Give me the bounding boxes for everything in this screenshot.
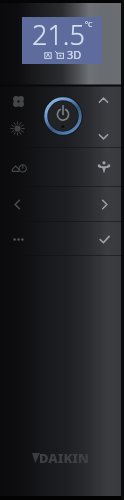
button[interactable]: Temperature down <box>91 124 115 148</box>
staticText: 21.5 <box>32 16 85 53</box>
button[interactable]: Display <box>22 17 102 64</box>
button[interactable]: Mode <box>5 116 29 140</box>
button[interactable]: Previous <box>5 192 29 216</box>
button[interactable]: More <box>6 227 30 251</box>
button[interactable]: Powerful <box>92 155 116 179</box>
button[interactable]: Next <box>92 192 116 216</box>
staticText: 3D <box>67 47 82 62</box>
button[interactable]: Power <box>43 96 83 136</box>
button[interactable]: Comfort <box>7 155 31 179</box>
staticText: °C <box>85 20 93 30</box>
button[interactable]: Temperature up <box>91 88 115 112</box>
staticText: DAIKIN <box>39 449 89 467</box>
button[interactable]: Fan speed <box>6 89 30 113</box>
button[interactable]: Confirm <box>92 227 116 251</box>
